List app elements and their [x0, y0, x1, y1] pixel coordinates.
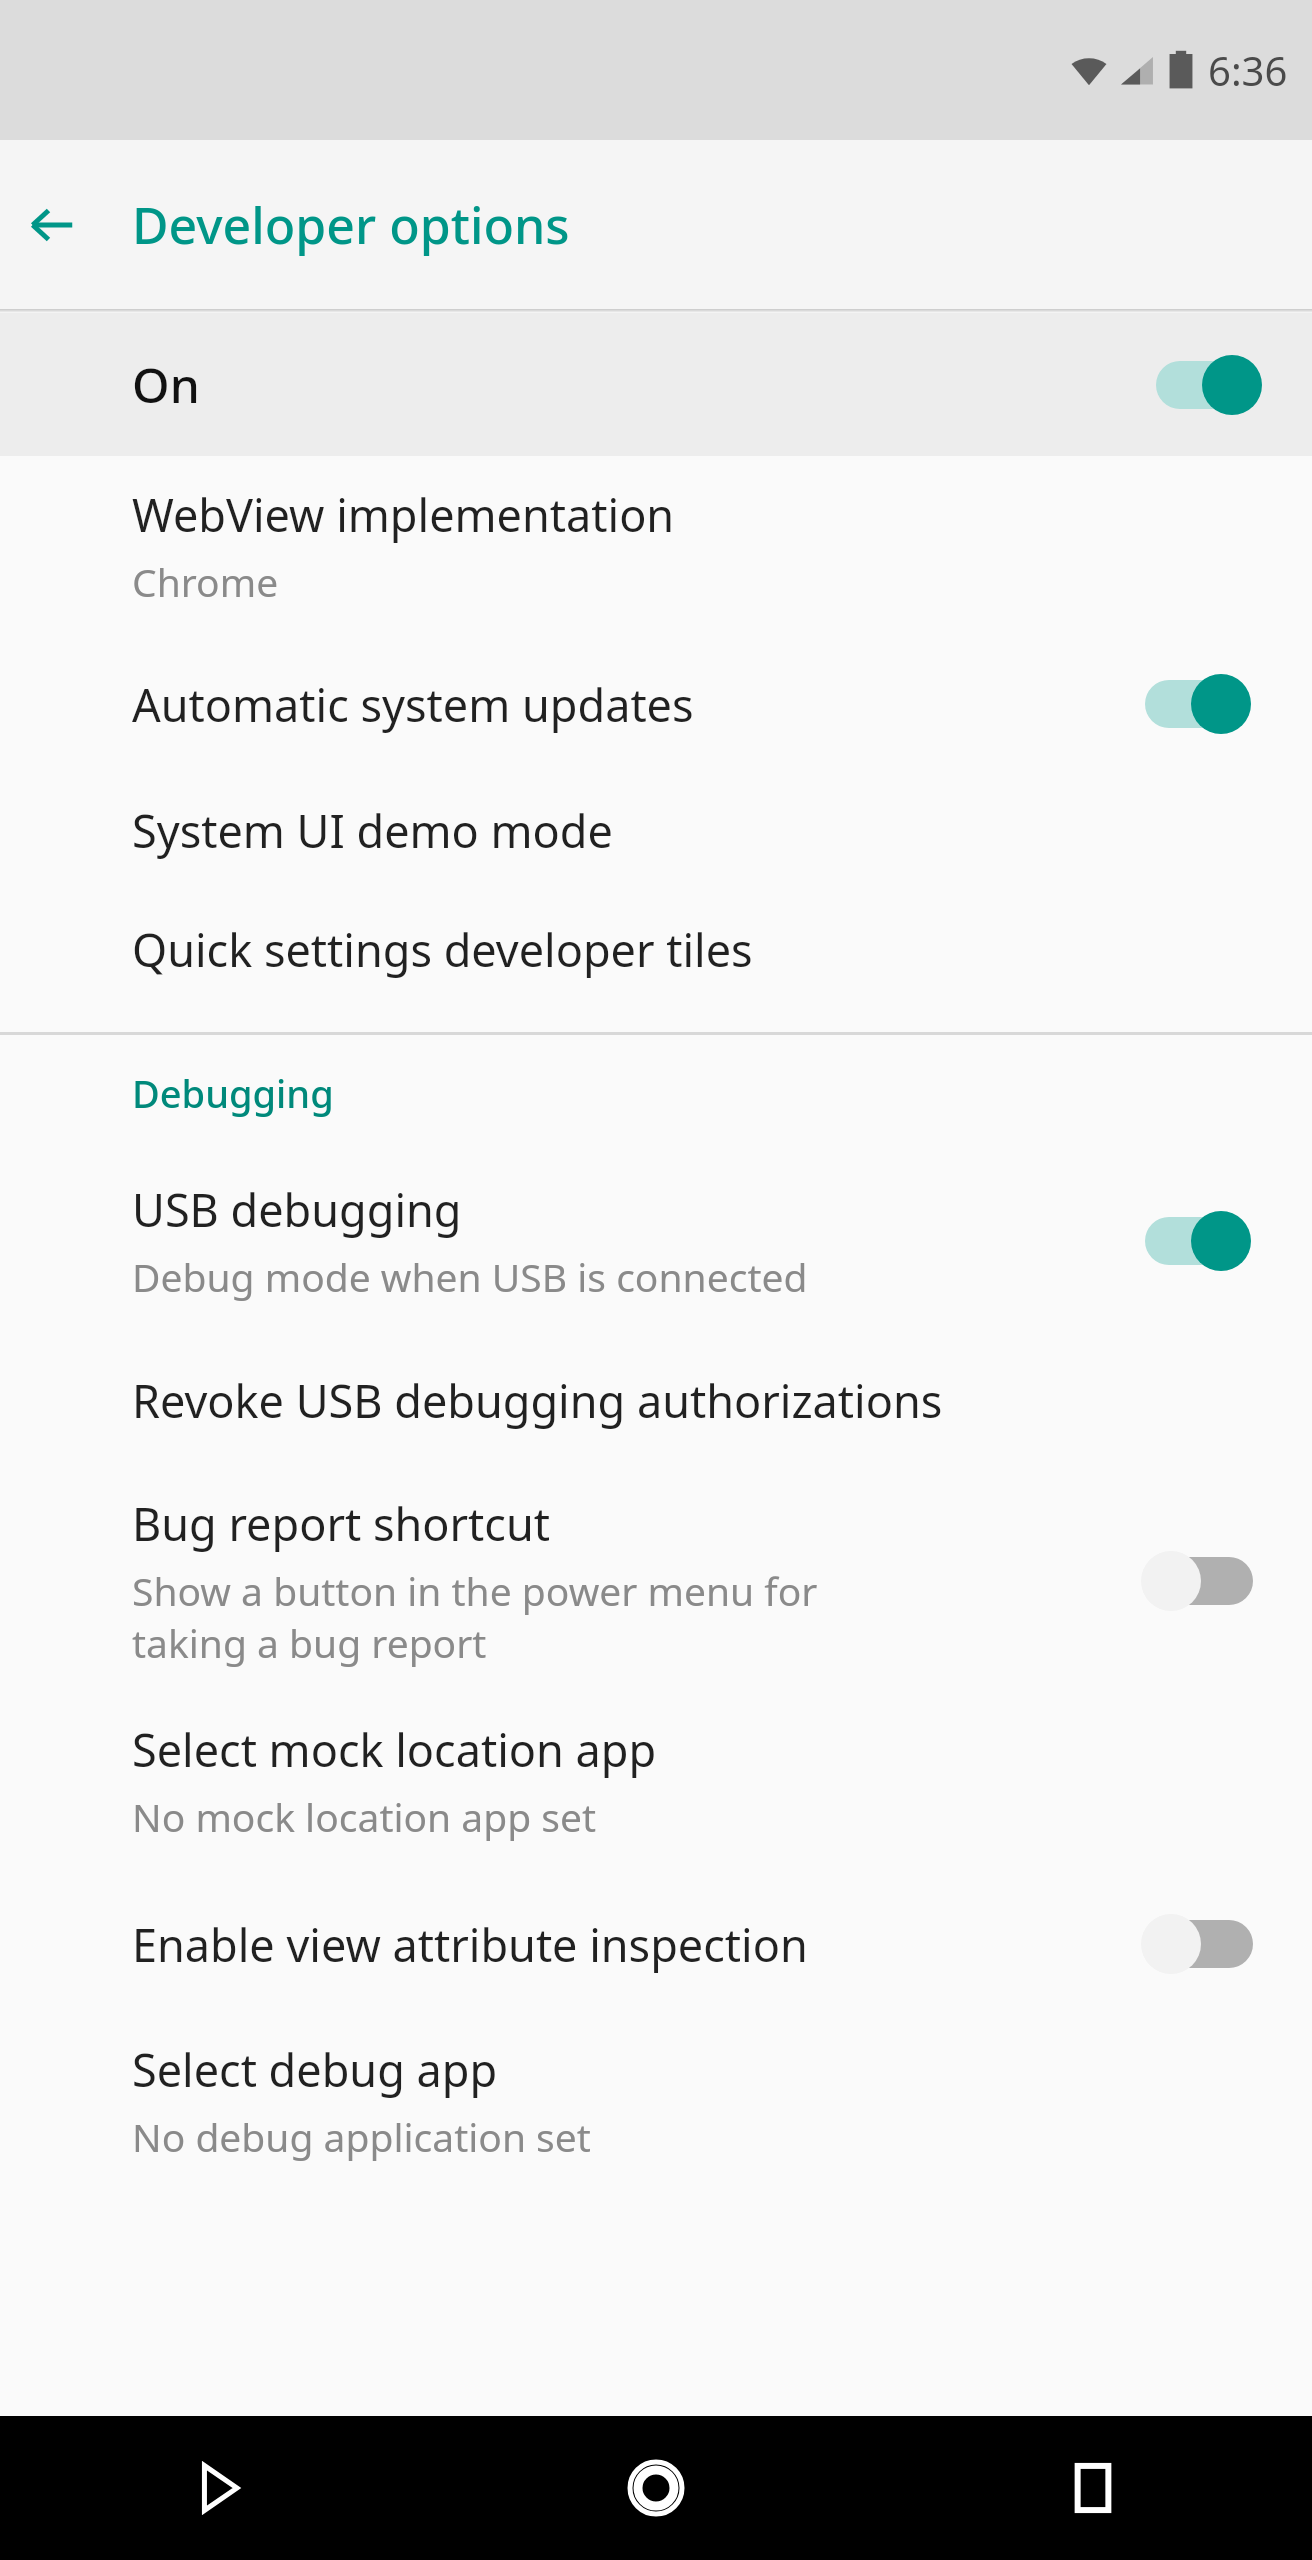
button[interactable]: WebView implementation — [0, 456, 1312, 638]
button[interactable]: Quick settings developer tiles — [0, 890, 1312, 1008]
button[interactable]: Back — [16, 189, 88, 261]
staticText: Chrome — [132, 555, 279, 608]
staticText: System UI demo mode — [132, 800, 613, 861]
staticText: Developer options — [132, 191, 570, 259]
button[interactable]: Select mock location app — [0, 1689, 1312, 1877]
button[interactable]: Automatic system updates — [0, 638, 1312, 770]
staticText: Show a button in the power menu for taki… — [132, 1564, 818, 1669]
button[interactable]: USB debugging — [0, 1151, 1312, 1333]
button[interactable]: Bug report shortcut — [0, 1467, 1312, 1689]
staticText: Debug mode when USB is connected — [132, 1250, 808, 1303]
other: Toggle on — [1141, 1211, 1253, 1271]
button[interactable]: System UI demo mode — [0, 770, 1312, 890]
staticText: Select mock location app — [132, 1719, 657, 1780]
other: Toggle on — [1141, 674, 1253, 734]
button[interactable]: Enable view attribute inspection — [0, 1877, 1312, 2011]
staticText: WebView implementation — [132, 484, 675, 545]
staticText: Debugging — [132, 1067, 334, 1119]
staticText: No mock location app set — [132, 1790, 597, 1843]
staticText: Revoke USB debugging authorizations — [132, 1370, 943, 1431]
staticText: 6:36 — [1208, 43, 1288, 97]
staticText: On — [132, 352, 1152, 417]
button[interactable]: Revoke USB debugging authorizations — [0, 1333, 1312, 1467]
button[interactable]: Select debug app — [0, 2011, 1312, 2193]
button[interactable]: Recent apps — [1033, 2428, 1153, 2548]
staticText: USB debugging — [132, 1179, 462, 1240]
other: Toggle off — [1141, 1551, 1253, 1611]
button[interactable]: Home — [596, 2428, 716, 2548]
staticText: No debug application set — [132, 2110, 591, 2163]
button[interactable]: Back — [159, 2428, 279, 2548]
staticText: Bug report shortcut — [132, 1493, 551, 1554]
staticText: Select debug app — [132, 2039, 498, 2100]
staticText: Enable view attribute inspection — [132, 1914, 1122, 1975]
staticText: Automatic system updates — [132, 674, 1122, 735]
staticText: Quick settings developer tiles — [132, 919, 753, 980]
button[interactable]: On — [0, 313, 1312, 456]
other: Toggle off — [1141, 1914, 1253, 1974]
other: Toggle on — [1152, 355, 1264, 415]
